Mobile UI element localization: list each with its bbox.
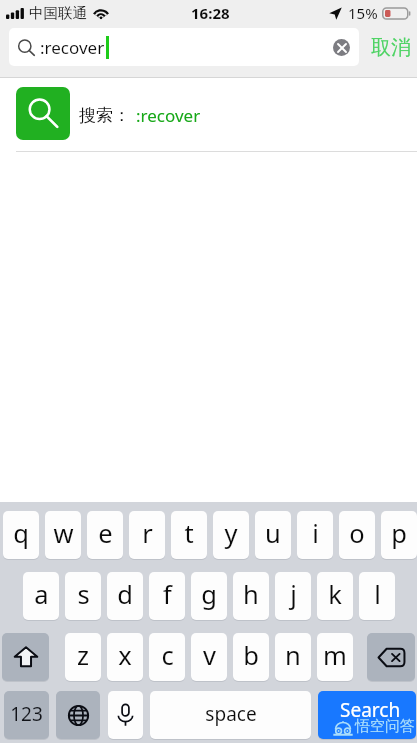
- button[interactable]: Shift: [2, 633, 49, 682]
- staticText: t: [184, 516, 194, 551]
- staticText: g: [201, 577, 217, 612]
- staticText: :recover: [40, 36, 105, 59]
- staticText: 15%: [348, 3, 378, 23]
- staticText: n: [285, 638, 301, 673]
- button[interactable]: a: [23, 572, 59, 621]
- staticText: Search: [340, 697, 401, 723]
- staticText: :recover: [136, 104, 201, 127]
- staticText: r: [142, 516, 153, 551]
- button[interactable]: w: [45, 511, 81, 560]
- button[interactable]: e: [87, 511, 123, 560]
- staticText: v: [203, 638, 216, 673]
- button[interactable]: v: [191, 633, 227, 682]
- staticText: 123: [10, 701, 43, 727]
- button[interactable]: Clear text: [333, 39, 350, 56]
- staticText: i: [312, 516, 319, 551]
- staticText: m: [323, 638, 347, 673]
- staticText: a: [34, 577, 49, 612]
- button[interactable]: Next keyboard: [56, 691, 100, 740]
- button[interactable]: o: [339, 511, 375, 560]
- button[interactable]: g: [191, 572, 227, 621]
- staticText: y: [224, 516, 238, 551]
- button[interactable]: :recover: [9, 28, 359, 66]
- staticText: 取消: [371, 35, 411, 60]
- staticText: w: [53, 516, 74, 551]
- button[interactable]: m: [317, 633, 353, 682]
- button[interactable]: r: [129, 511, 165, 560]
- button[interactable]: f: [149, 572, 185, 621]
- staticText: k: [328, 577, 342, 612]
- button[interactable]: x: [107, 633, 143, 682]
- button[interactable]: 取消: [366, 26, 414, 69]
- staticText: p: [391, 516, 407, 551]
- staticText: 搜索：: [79, 105, 130, 126]
- button[interactable]: 搜索：: [0, 78, 417, 152]
- button[interactable]: h: [233, 572, 269, 621]
- button[interactable]: k: [317, 572, 353, 621]
- button[interactable]: space: [150, 691, 311, 740]
- button[interactable]: y: [213, 511, 249, 560]
- button[interactable]: n: [275, 633, 311, 682]
- staticText: d: [117, 577, 133, 612]
- staticText: 悟空问答: [355, 717, 415, 736]
- button[interactable]: i: [297, 511, 333, 560]
- button[interactable]: t: [171, 511, 207, 560]
- staticText: l: [374, 577, 381, 612]
- staticText: h: [243, 577, 259, 612]
- staticText: 中国联通: [29, 4, 87, 22]
- staticText: z: [77, 638, 89, 673]
- button[interactable]: u: [255, 511, 291, 560]
- button[interactable]: Dictate: [108, 691, 143, 740]
- button[interactable]: d: [107, 572, 143, 621]
- staticText: u: [265, 516, 281, 551]
- button[interactable]: b: [233, 633, 269, 682]
- button[interactable]: p: [381, 511, 417, 560]
- staticText: space: [205, 701, 257, 727]
- button[interactable]: Search: [318, 691, 416, 740]
- button[interactable]: Backspace: [367, 633, 415, 682]
- button[interactable]: c: [149, 633, 185, 682]
- staticText: c: [161, 638, 174, 673]
- button[interactable]: l: [359, 572, 395, 621]
- staticText: q: [13, 516, 29, 551]
- button[interactable]: z: [65, 633, 101, 682]
- staticText: o: [349, 516, 365, 551]
- staticText: s: [77, 577, 90, 612]
- staticText: e: [98, 516, 113, 551]
- staticText: f: [163, 577, 172, 612]
- button[interactable]: j: [275, 572, 311, 621]
- staticText: x: [118, 638, 132, 673]
- button[interactable]: q: [3, 511, 39, 560]
- button[interactable]: s: [65, 572, 101, 621]
- staticText: j: [290, 577, 297, 612]
- button[interactable]: 123: [4, 691, 49, 740]
- staticText: 16:28: [191, 3, 230, 23]
- staticText: b: [243, 638, 259, 673]
